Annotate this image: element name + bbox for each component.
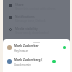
button[interactable]: Notifications [3,12,70,24]
button[interactable]: Media visibility [3,24,70,36]
staticText: Hey how ar [14,49,29,53]
staticText: Mark Zuckerber [14,44,39,48]
button[interactable]: Mark Zuckerber [3,41,70,55]
staticText: Good mornin [14,63,31,67]
staticText: Notifications [15,15,35,19]
staticText: Mark Zuckerberg ( [14,58,43,62]
button[interactable]: Mark Zuckerberg ( [3,55,70,69]
staticText: Media visibility [15,27,38,31]
button[interactable]: Share [3,0,70,12]
staticText: Share [15,3,24,7]
